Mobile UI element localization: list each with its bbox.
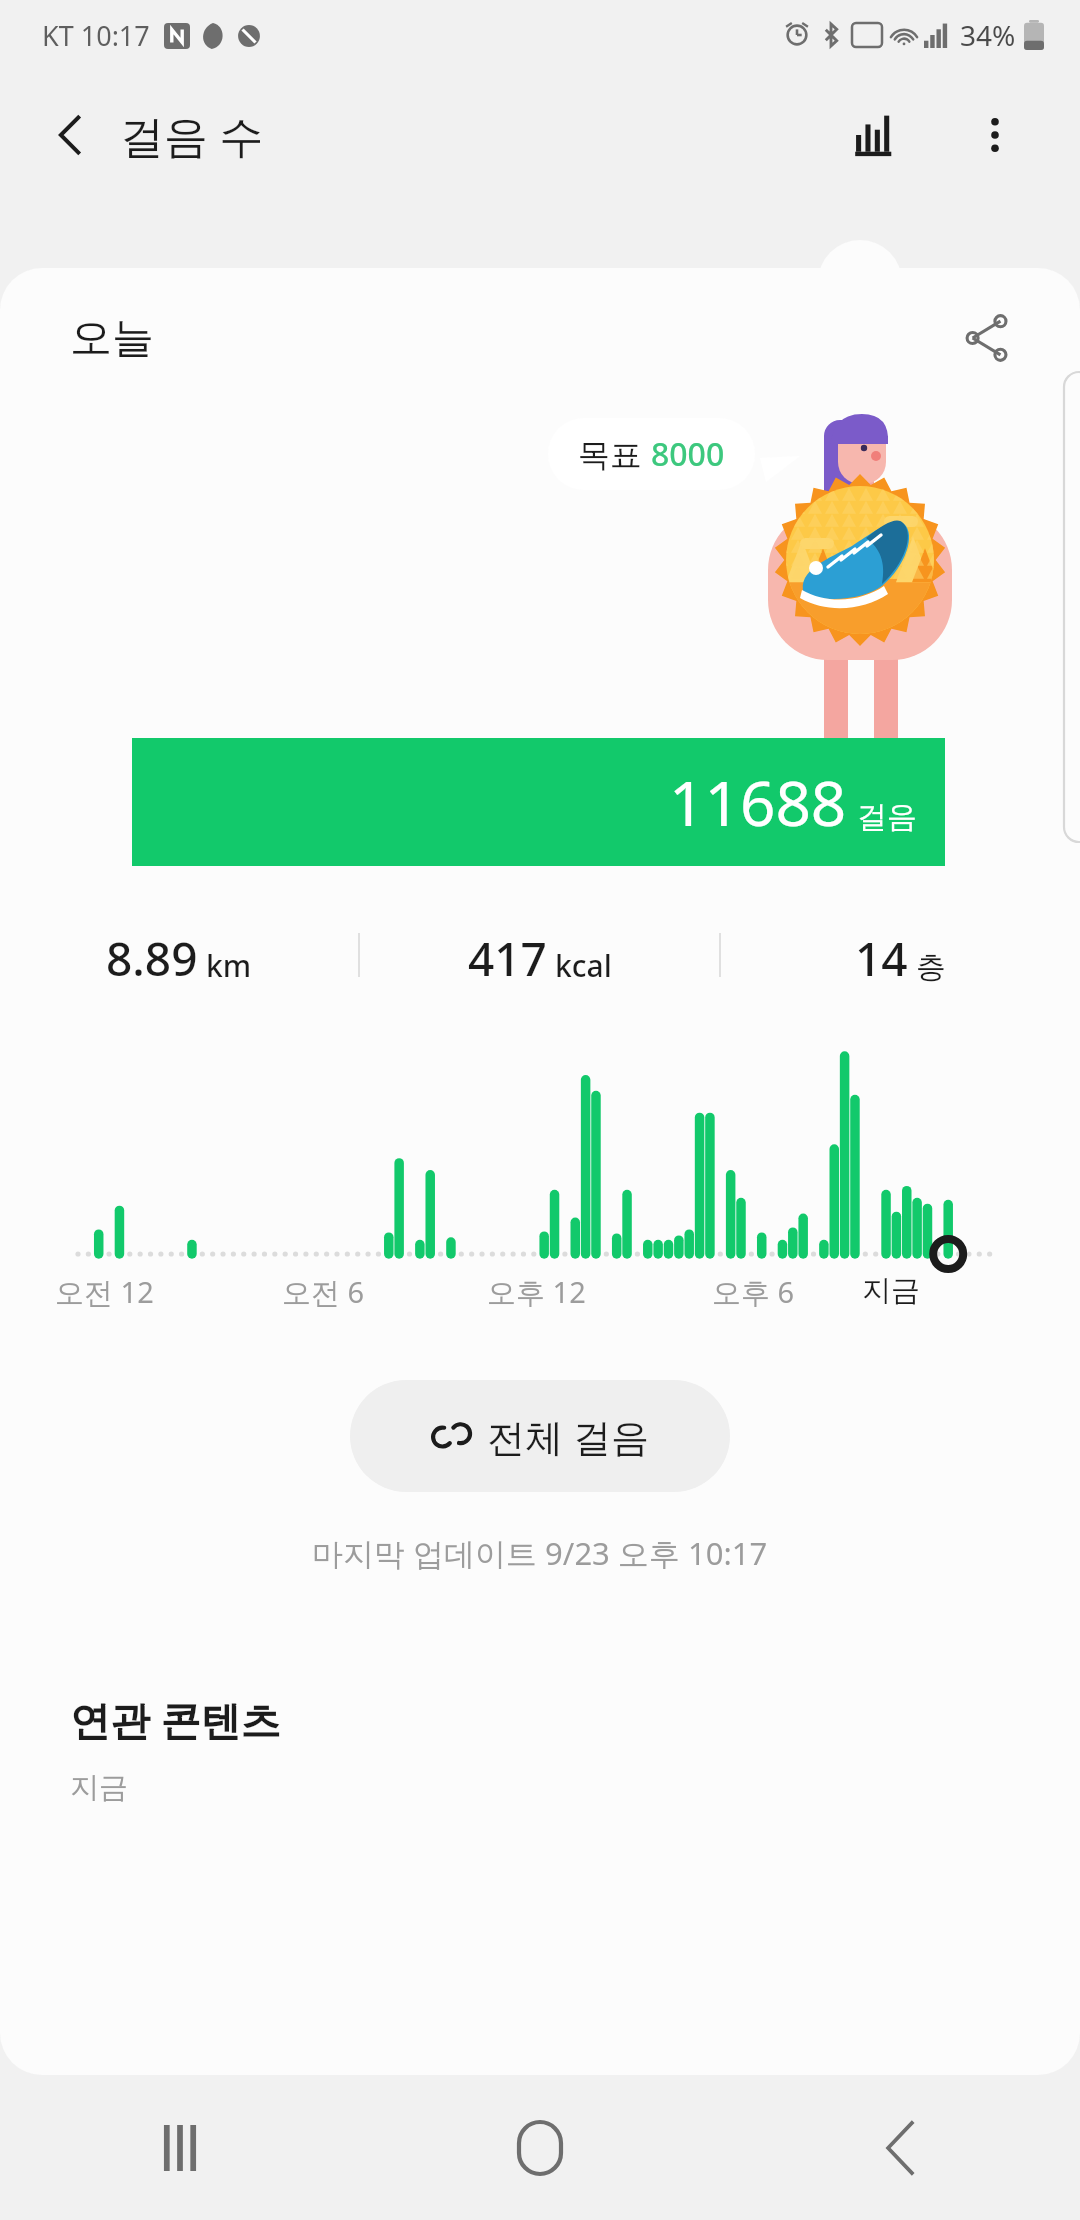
staticText: 목표 [578,432,651,476]
button[interactable]: 11688 [132,738,945,866]
staticText: 오후 12 [487,1272,586,1312]
button[interactable]: 전체 걸음 [350,1380,730,1492]
button[interactable]: Recents [0,2075,360,2220]
staticText: 오전 12 [55,1272,154,1312]
staticText: 걸음 수 [120,105,264,165]
staticText: 417 [468,927,547,990]
staticText: 지금 [862,1272,920,1309]
staticText: 오후 6 [712,1272,795,1312]
button[interactable]: Home [360,2075,720,2220]
staticText: 걸음 [857,798,917,836]
button[interactable]: More options [950,90,1040,180]
staticText: 지금 [70,1769,128,1806]
button[interactable]: Back [720,2075,1080,2220]
staticText: 전체 걸음 [487,1410,649,1462]
staticText: 8000 [651,432,725,476]
staticText: 8.89 [106,927,198,990]
staticText: 34% [960,16,1016,54]
button[interactable]: Chart [830,90,920,180]
staticText: 11688 [669,760,847,844]
staticText: 층 [916,948,946,986]
staticText: 마지막 업데이트 9/23 오후 10:17 [312,1532,768,1574]
staticText: KT 10:17 [42,17,150,54]
button[interactable]: 14 [721,920,1080,990]
staticText: 오늘 [70,312,154,365]
staticText: km [206,945,252,986]
button[interactable]: 417 [360,920,719,990]
button[interactable]: Share [944,295,1030,381]
button[interactable]: Back [28,93,112,177]
staticText: kcal [555,945,612,986]
button[interactable]: 8.89 [0,920,358,990]
staticText: 연관 콘텐츠 [70,1692,281,1747]
staticText: 오전 6 [282,1272,365,1312]
staticText: 14 [855,927,908,990]
